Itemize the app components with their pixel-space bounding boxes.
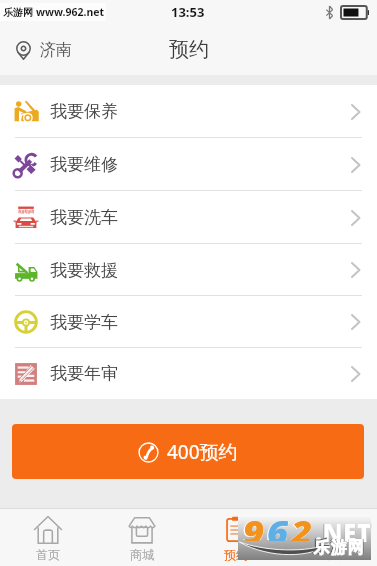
staticText: 我要维修: [50, 154, 118, 175]
button[interactable]: 我要救援: [0, 244, 377, 296]
staticText: 首页: [36, 547, 60, 562]
button[interactable]: 我的: [283, 508, 377, 566]
button[interactable]: 济南: [0, 32, 84, 68]
staticText: 6: [267, 511, 288, 541]
staticText: 我要洗车: [50, 207, 118, 228]
staticText: 乐游网: [313, 538, 364, 558]
staticText: 我要救援: [50, 260, 118, 281]
staticText: 乐游网: [312, 537, 365, 558]
staticText: 2: [290, 510, 313, 540]
staticText: .NET: [315, 516, 372, 549]
button[interactable]: 商城: [95, 508, 189, 566]
button[interactable]: 我要学车: [0, 296, 377, 348]
staticText: 400预约: [167, 439, 238, 465]
staticText: 我要保养: [50, 101, 118, 122]
staticText: .NET: [314, 515, 373, 549]
staticText: 商城: [130, 547, 154, 562]
staticText: 9: [242, 510, 265, 540]
staticText: 我要年审: [50, 363, 118, 384]
staticText: 2: [291, 511, 312, 541]
staticText: 预约: [169, 37, 209, 62]
button[interactable]: 我要年审: [0, 348, 377, 399]
button[interactable]: 我要洗车: [0, 191, 377, 244]
staticText: www.962.net: [36, 5, 105, 19]
staticText: 济南: [40, 40, 72, 60]
staticText: 6: [266, 510, 289, 540]
staticText: 我的: [318, 547, 342, 562]
button[interactable]: 我要维修: [0, 138, 377, 191]
staticText: 13:53: [171, 3, 205, 21]
button[interactable]: 首页: [0, 508, 95, 566]
staticText: 我要学车: [50, 312, 118, 333]
staticText: 乐游网: [3, 6, 33, 19]
staticText: 9: [243, 511, 264, 541]
button[interactable]: 400预约: [12, 424, 364, 479]
staticText: 预约: [224, 547, 248, 562]
button[interactable]: 预约: [189, 508, 283, 566]
button[interactable]: 我要保养: [0, 85, 377, 138]
